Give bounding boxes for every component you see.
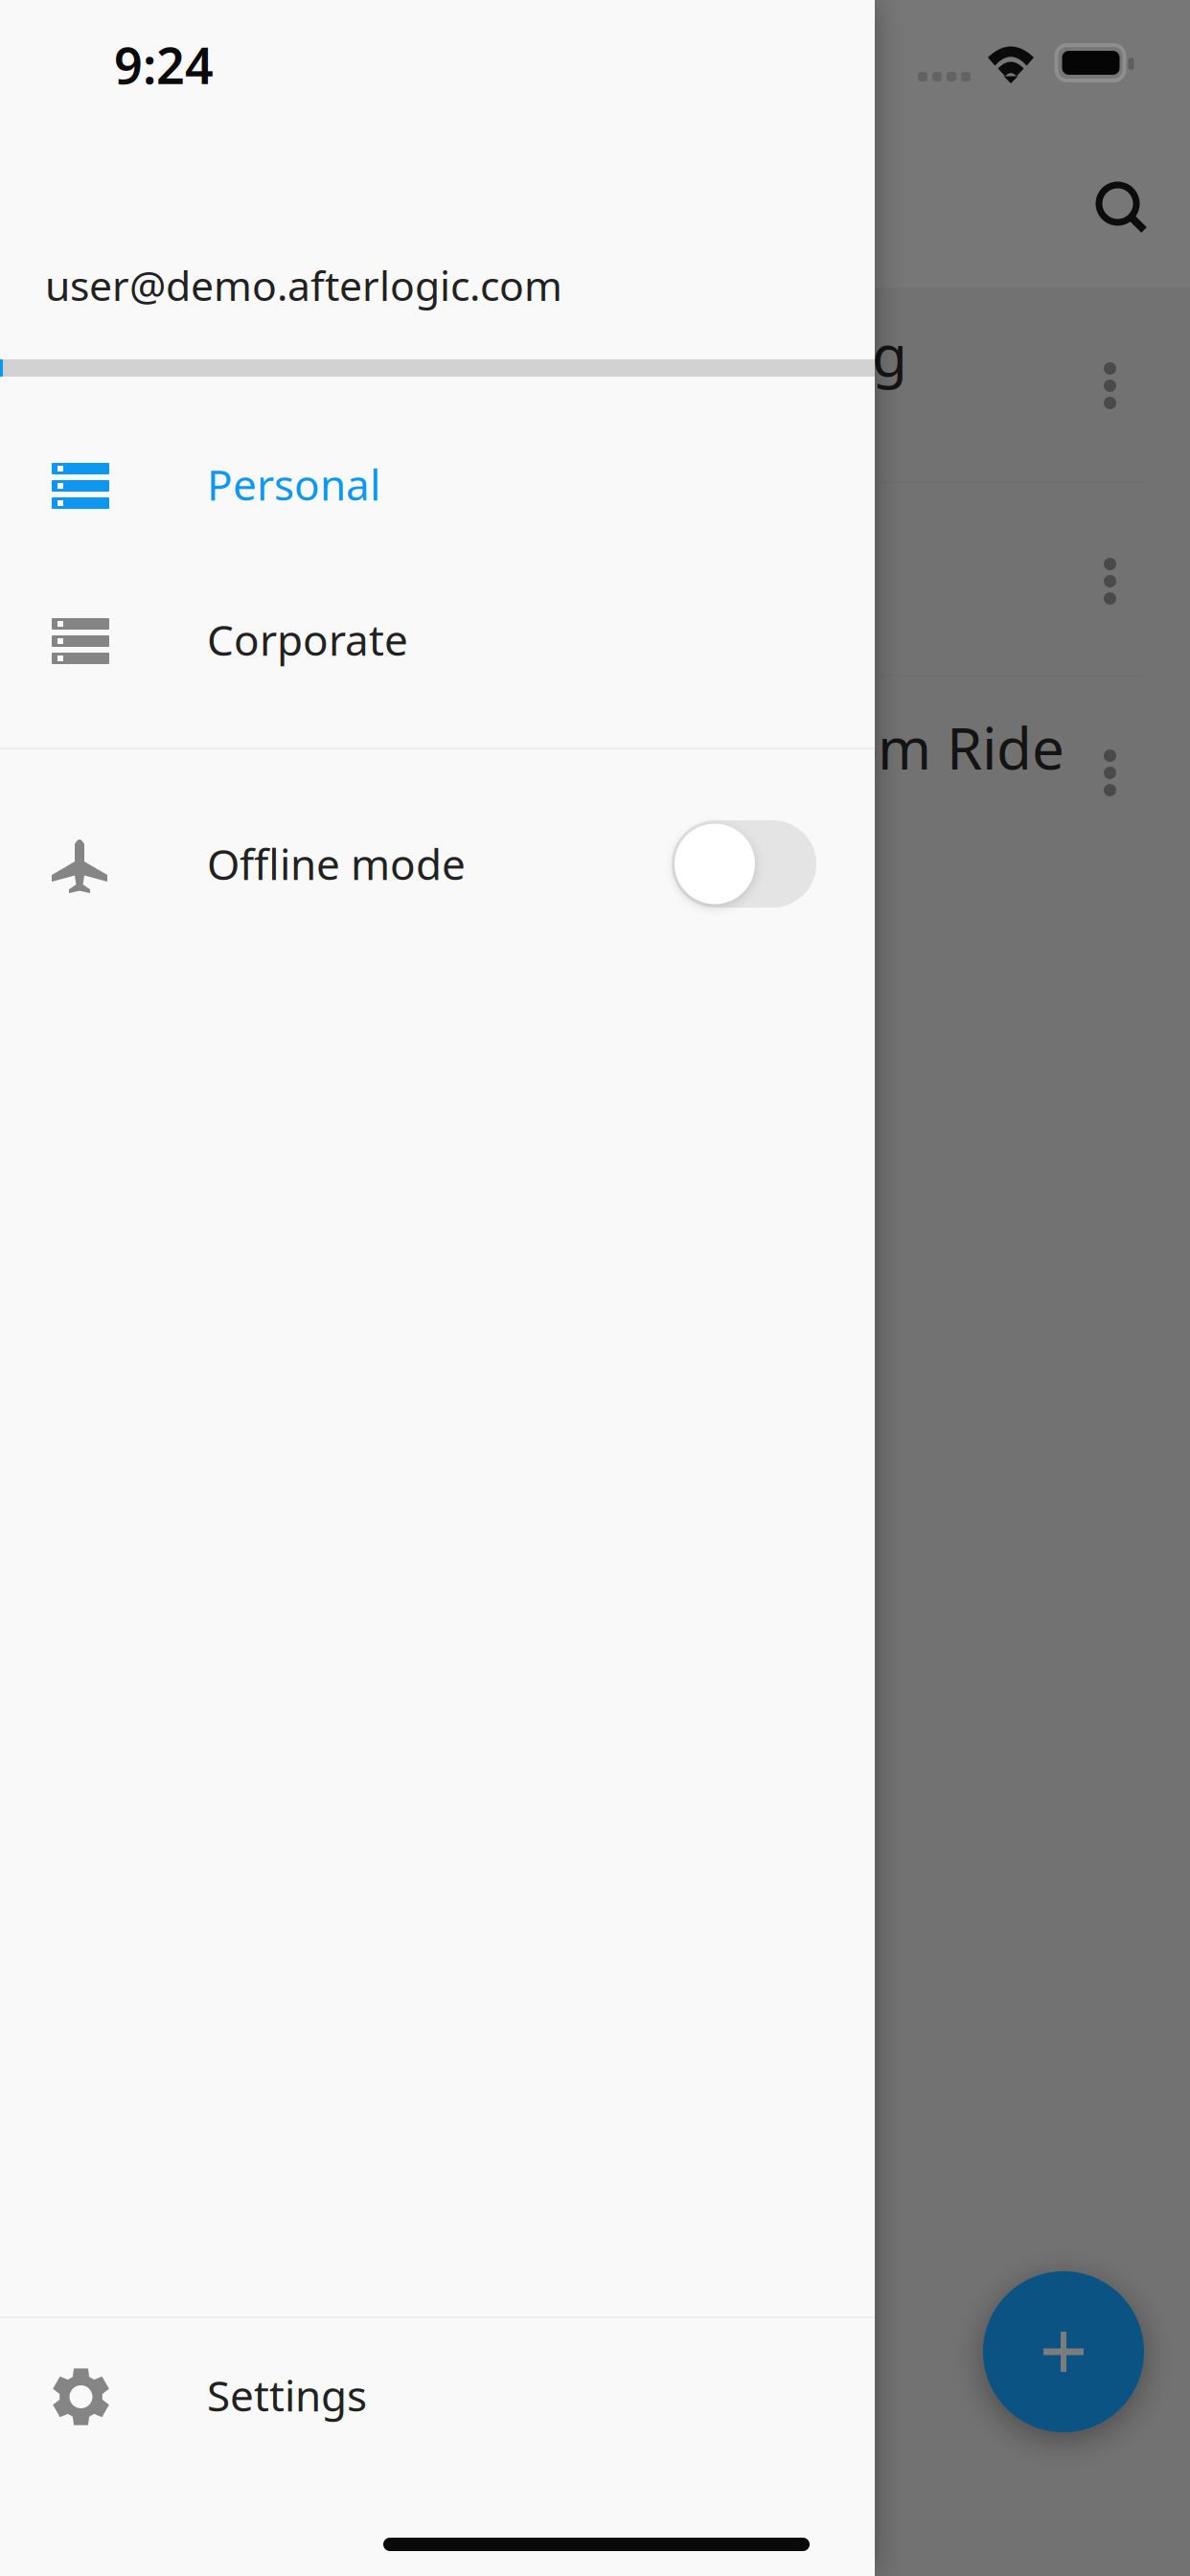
- staticText: Corporate: [207, 611, 408, 667]
- staticText: user@demo.afterlogic.com: [45, 258, 562, 312]
- button[interactable]: Personal: [0, 404, 875, 560]
- button[interactable]: Compose: [983, 2271, 1144, 2432]
- button[interactable]: user@demo.afterlogic.com: [0, 240, 875, 332]
- staticText: Personal: [207, 456, 380, 512]
- button[interactable]: More: [1098, 745, 1144, 802]
- staticText: og: [837, 316, 907, 393]
- staticText: Offline mode: [207, 836, 466, 892]
- button[interactable]: Close menu: [875, 0, 1190, 2576]
- staticText: 9:24: [114, 32, 214, 98]
- staticText: dom Ride: [808, 709, 1064, 786]
- staticText: Settings: [207, 2367, 367, 2423]
- button[interactable]: More: [1098, 357, 1144, 415]
- button[interactable]: Corporate: [0, 560, 875, 715]
- button[interactable]: Settings: [0, 2318, 875, 2479]
- button[interactable]: Offline mode: [0, 784, 875, 945]
- button[interactable]: Search: [1091, 177, 1153, 239]
- button[interactable]: More: [1098, 553, 1144, 610]
- button[interactable]: Offline mode: [672, 820, 816, 908]
